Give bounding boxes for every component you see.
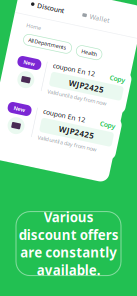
staticText: New xyxy=(20,67,32,74)
staticText: coupon En 12 xyxy=(50,63,93,72)
staticText: Valid until a day from now xyxy=(50,138,110,145)
staticText: Home xyxy=(15,31,30,38)
staticText: Wallet xyxy=(75,8,95,17)
staticText: Health xyxy=(74,45,90,52)
staticText: New xyxy=(20,114,32,121)
staticText: Various discount offers are constantly a… xyxy=(18,208,118,279)
staticText: Copy xyxy=(108,110,124,119)
staticText: WJP2425 xyxy=(69,76,105,87)
staticText: Discount xyxy=(22,8,50,17)
staticText: coupon En 12 xyxy=(50,110,93,119)
staticText: WJP2425 xyxy=(69,123,105,134)
staticText: All Departments xyxy=(20,45,59,52)
staticText: Valid until a day from now xyxy=(50,91,110,98)
